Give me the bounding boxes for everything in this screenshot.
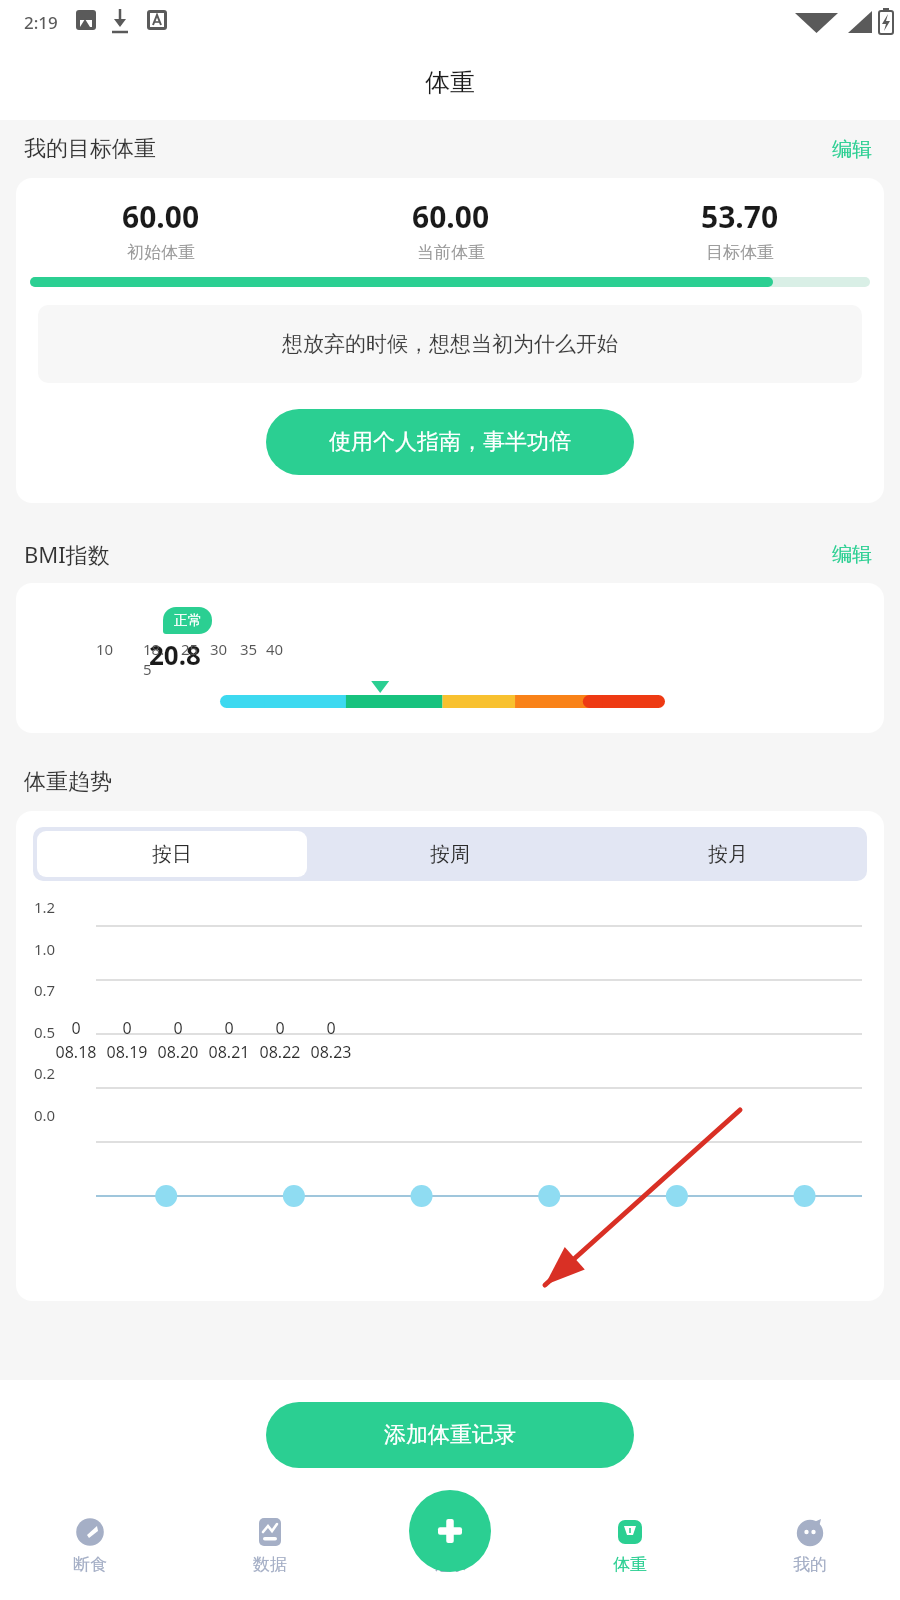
button[interactable]: 按日	[37, 831, 307, 877]
staticText: 10	[96, 639, 118, 659]
staticText: 按周	[430, 842, 470, 867]
staticText: 35	[240, 639, 262, 659]
staticText: 18.5	[143, 639, 165, 679]
staticText: 想放弃的时候，想想当初为什么开始	[282, 331, 618, 357]
staticText: 0	[156, 1017, 200, 1039]
staticText: 08.21	[205, 1041, 253, 1063]
staticText: 记录	[433, 1554, 467, 1575]
staticText: 我的	[793, 1554, 827, 1575]
staticText: 体重	[613, 1554, 647, 1575]
staticText: 当前体重	[417, 242, 485, 263]
staticText: 我的目标体重	[24, 135, 156, 163]
staticText: 08.23	[307, 1041, 355, 1063]
staticText: 0	[54, 1017, 98, 1039]
button[interactable]: 我的	[720, 1504, 900, 1600]
staticText: 断食	[73, 1554, 107, 1575]
staticText: 0.5	[34, 1022, 56, 1042]
staticText: 按日	[152, 842, 192, 867]
staticText: 1.2	[34, 897, 56, 917]
button[interactable]: 数据	[180, 1504, 360, 1600]
button[interactable]: 添加体重记录	[266, 1402, 634, 1468]
staticText: 08.22	[256, 1041, 304, 1063]
staticText: 30	[210, 639, 232, 659]
staticText: 20.8	[149, 637, 201, 672]
staticText: 53.70	[701, 196, 779, 237]
staticText: 60.00	[412, 196, 490, 237]
button[interactable]: 断食	[0, 1504, 180, 1600]
staticText: 目标体重	[706, 242, 774, 263]
staticText: 0	[258, 1017, 302, 1039]
button[interactable]: 记录	[360, 1504, 540, 1600]
staticText: 0.7	[34, 980, 56, 1000]
button[interactable]: 编辑	[828, 538, 876, 571]
staticText: 1.0	[34, 939, 56, 959]
staticText: 添加体重记录	[384, 1421, 516, 1449]
staticText: 08.18	[52, 1041, 100, 1063]
button[interactable]: 体重	[540, 1504, 720, 1600]
staticText: 编辑	[832, 137, 872, 162]
staticText: 数据	[253, 1554, 287, 1575]
button[interactable]: 编辑	[828, 133, 876, 166]
staticText: 0	[207, 1017, 251, 1039]
button[interactable]: 按月	[593, 831, 863, 877]
staticText: 08.19	[103, 1041, 151, 1063]
staticText: 正常	[174, 612, 202, 630]
staticText: 按月	[708, 842, 748, 867]
button[interactable]: 记录	[409, 1490, 491, 1572]
staticText: 初始体重	[127, 242, 195, 263]
staticText: 60.00	[122, 196, 200, 237]
staticText: 0	[309, 1017, 353, 1039]
staticText: 编辑	[832, 542, 872, 567]
staticText: 2:19	[24, 11, 58, 34]
staticText: 0	[105, 1017, 149, 1039]
staticText: 体重趋势	[24, 768, 112, 796]
staticText: 40	[266, 639, 288, 659]
button[interactable]: 使用个人指南，事半功倍	[266, 409, 634, 475]
staticText: 25	[181, 639, 203, 659]
staticText: 08.20	[154, 1041, 202, 1063]
staticText: 0.2	[34, 1063, 56, 1083]
staticText: 使用个人指南，事半功倍	[329, 428, 571, 456]
staticText: 体重	[425, 67, 475, 98]
staticText: BMI指数	[24, 539, 110, 569]
staticText: 0.0	[34, 1105, 56, 1125]
button[interactable]: 按周	[315, 831, 585, 877]
